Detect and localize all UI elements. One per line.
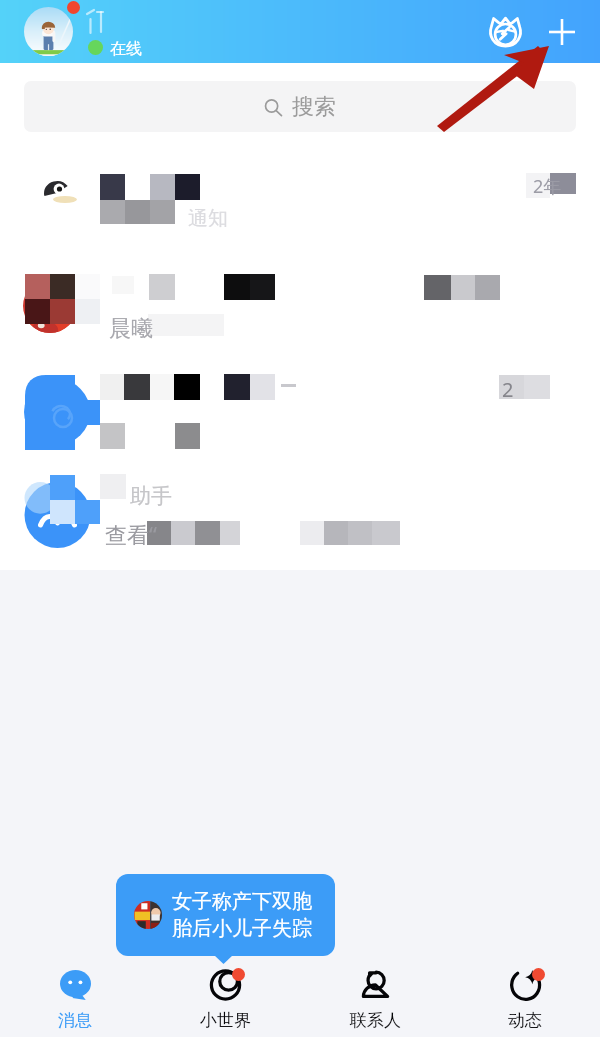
staticText: 2年 (533, 174, 562, 199)
staticText: 联系人 (350, 1010, 401, 1031)
button[interactable]: 通知 (0, 132, 600, 234)
staticText: 消息 (58, 1010, 92, 1031)
button[interactable]: 小世界 (150, 964, 300, 1037)
staticText: 女子称产下双胞 胎后小儿子失踪 (172, 889, 312, 941)
button[interactable]: 联系人 (300, 964, 450, 1037)
button[interactable]: 晨曦 (0, 232, 600, 332)
staticText: 动态 (508, 1010, 542, 1031)
staticText: 查看“ (105, 519, 157, 549)
staticText: 通知 (188, 206, 228, 231)
staticText: 助手 (130, 483, 172, 509)
staticText: 晨曦 (109, 315, 153, 343)
staticText: 搜索 (292, 93, 336, 121)
button[interactable]: 动态 (450, 964, 600, 1037)
button[interactable]: 消息 (0, 964, 150, 1037)
staticText: 小世界 (200, 1010, 251, 1031)
button[interactable]: 助手 (0, 432, 600, 532)
button[interactable]: Profile (24, 7, 73, 56)
staticText: 在线 (110, 39, 142, 59)
button[interactable]: Add (538, 8, 586, 56)
staticText: 2 (502, 376, 514, 403)
button[interactable]: 搜索 (24, 81, 576, 132)
button[interactable]: Mascot (481, 8, 529, 56)
button[interactable]: 女子称产下双胞 胎后小儿子失踪 (116, 874, 335, 956)
button[interactable]: 2 (0, 332, 600, 432)
